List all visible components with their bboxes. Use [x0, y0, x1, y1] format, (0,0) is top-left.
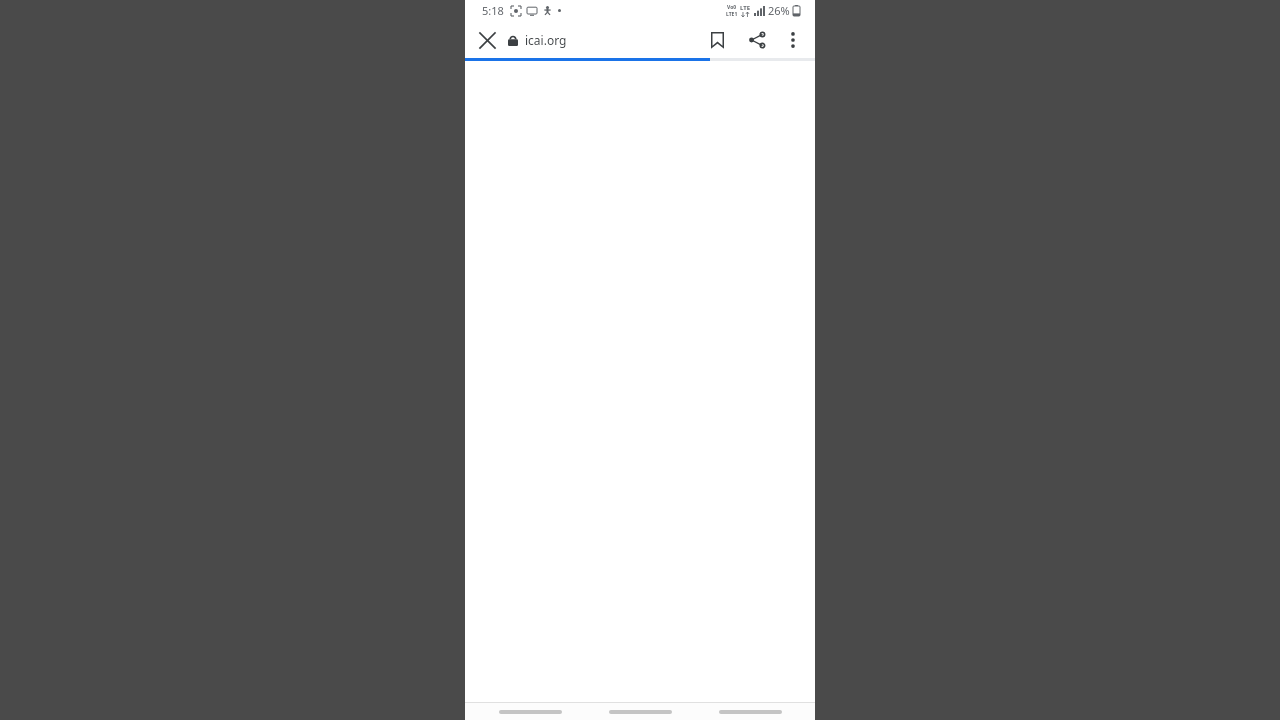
button[interactable]: Share [741, 24, 773, 56]
button[interactable]: Close [472, 25, 502, 55]
staticText: Vo0 [727, 4, 737, 11]
button[interactable]: icai.org [508, 21, 701, 58]
button[interactable]: Recents [705, 703, 795, 720]
button[interactable]: Bookmark [701, 24, 733, 56]
button[interactable]: Home [595, 703, 685, 720]
staticText: LTE1 [726, 11, 738, 18]
button[interactable]: More options [777, 24, 809, 56]
staticText: 5:18 [482, 3, 504, 18]
staticText: 26% [768, 3, 790, 18]
staticText: icai.org [525, 32, 567, 48]
button[interactable]: Back [485, 703, 575, 720]
staticText: LTE [740, 4, 751, 12]
